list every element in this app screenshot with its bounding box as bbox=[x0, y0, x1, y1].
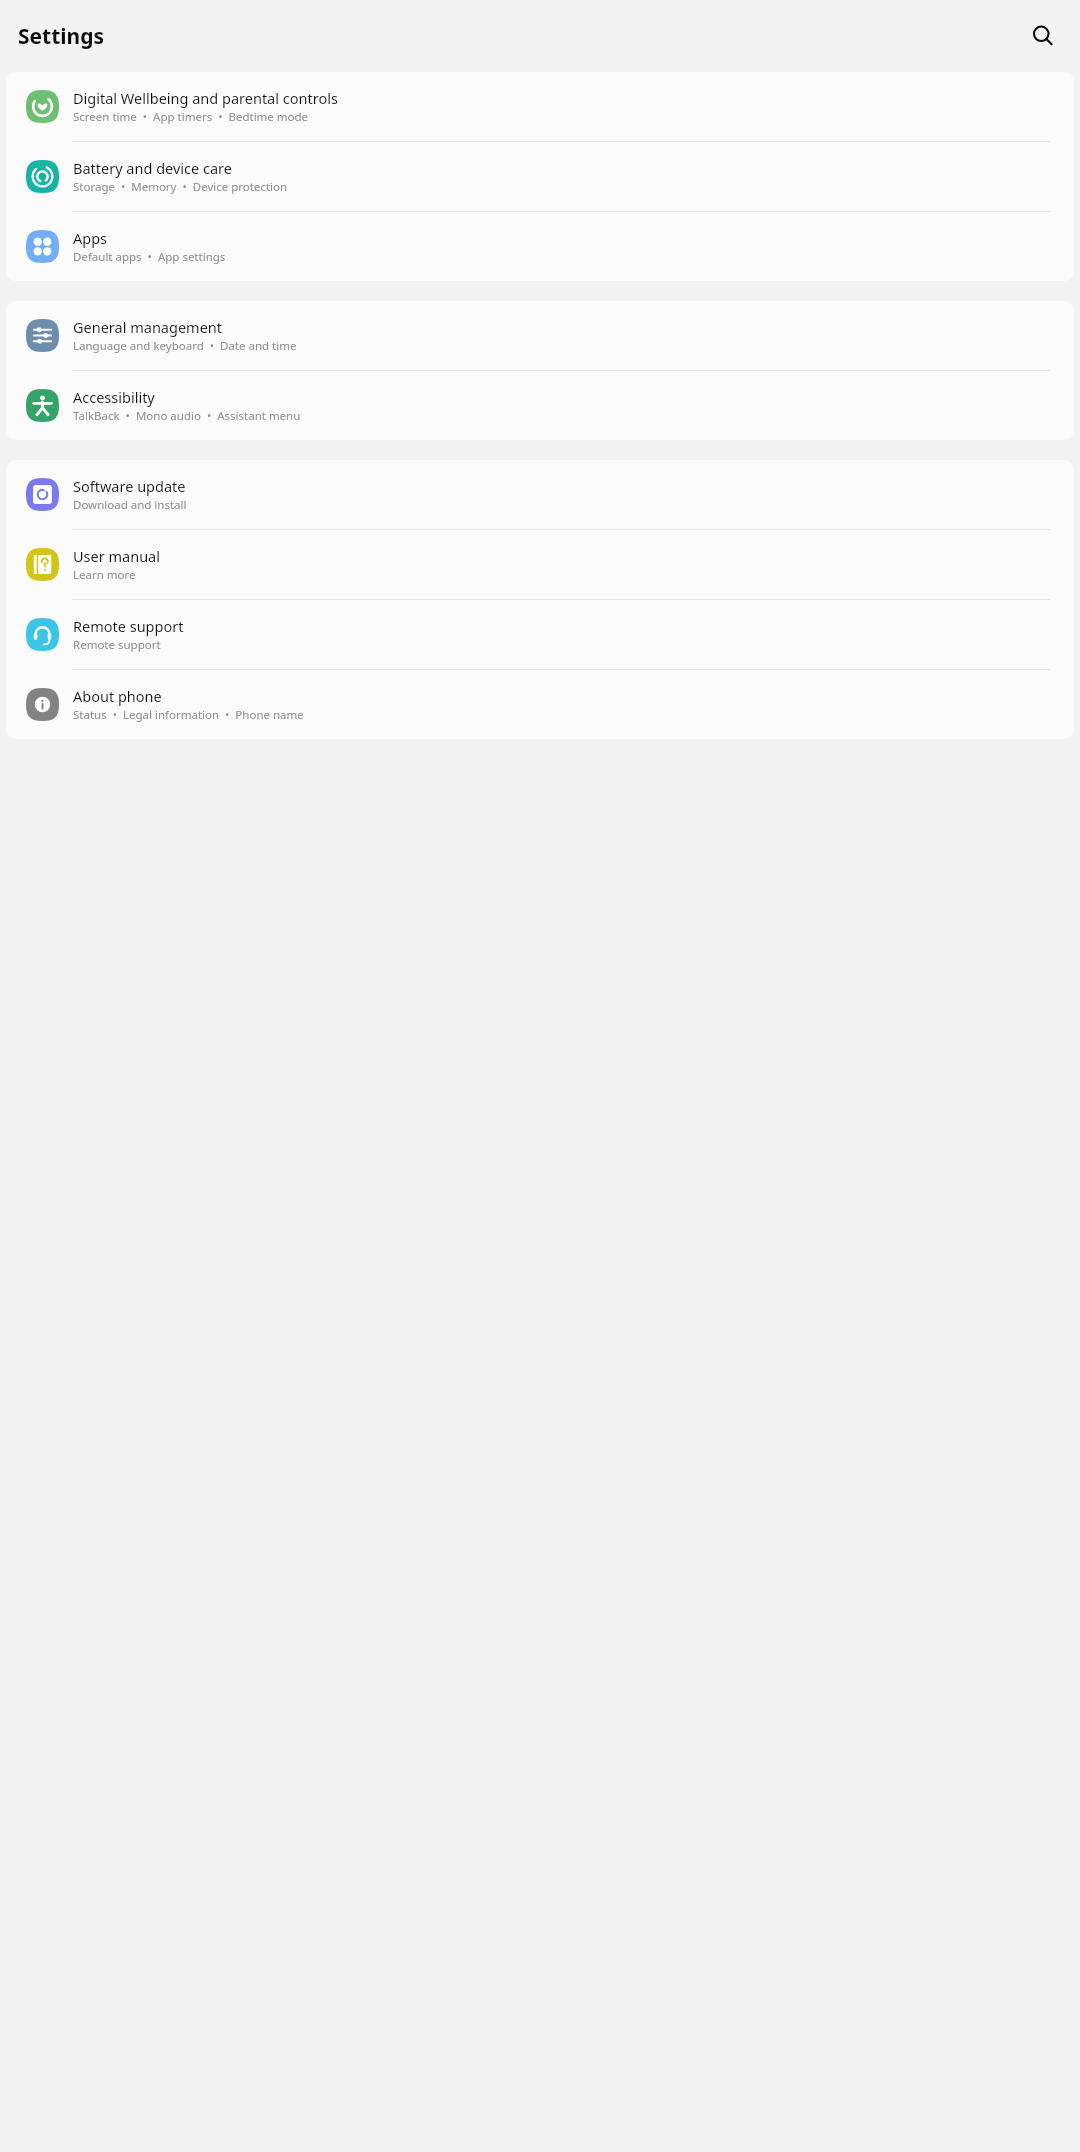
button[interactable]: Search bbox=[1026, 19, 1060, 53]
staticText: Storage • Memory • Device protection bbox=[73, 179, 288, 195]
button[interactable]: About phone bbox=[6, 670, 1074, 739]
staticText: About phone bbox=[73, 686, 162, 706]
staticText: Accessibility bbox=[73, 387, 155, 407]
staticText: Default apps • App settings bbox=[73, 249, 226, 265]
button[interactable]: Battery and device care bbox=[6, 142, 1074, 211]
staticText: Digital Wellbeing and parental controls bbox=[73, 88, 338, 108]
button[interactable]: Accessibility bbox=[6, 371, 1074, 440]
button[interactable]: Digital Wellbeing and parental controls bbox=[6, 72, 1074, 141]
staticText: Screen time • App timers • Bedtime mode bbox=[73, 109, 309, 125]
button[interactable]: Software update bbox=[6, 460, 1074, 529]
staticText: Download and install bbox=[73, 497, 187, 513]
button[interactable]: Remote support bbox=[6, 600, 1074, 669]
staticText: Language and keyboard • Date and time bbox=[73, 338, 297, 354]
staticText: Status • Legal information • Phone name bbox=[73, 707, 304, 723]
staticText: Remote support bbox=[73, 637, 161, 653]
staticText: User manual bbox=[73, 546, 160, 566]
button[interactable]: Apps bbox=[6, 212, 1074, 281]
button[interactable]: General management bbox=[6, 301, 1074, 370]
staticText: Settings bbox=[18, 22, 1026, 51]
staticText: General management bbox=[73, 317, 223, 337]
staticText: Remote support bbox=[73, 616, 184, 636]
button[interactable]: User manual bbox=[6, 530, 1074, 599]
staticText: Apps bbox=[73, 228, 108, 248]
staticText: TalkBack • Mono audio • Assistant menu bbox=[73, 408, 301, 424]
staticText: Learn more bbox=[73, 567, 136, 583]
staticText: Battery and device care bbox=[73, 158, 232, 178]
staticText: Software update bbox=[73, 476, 186, 496]
